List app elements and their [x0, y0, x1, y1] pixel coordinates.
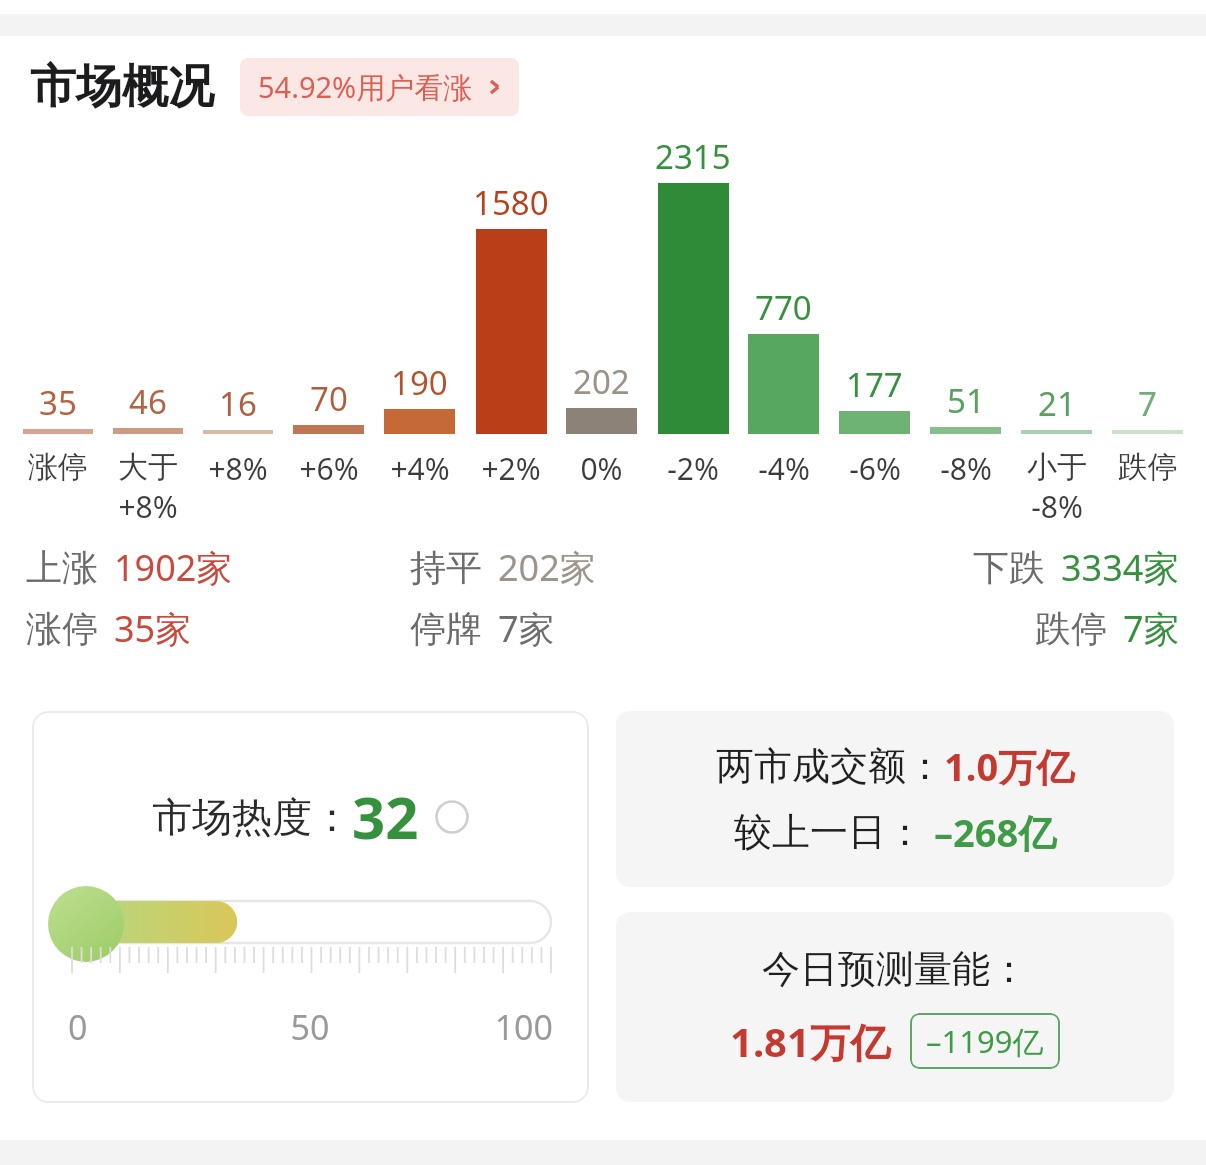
button[interactable]: 今日预测量能： [616, 912, 1174, 1102]
staticText: 1.81万亿 [730, 1014, 890, 1069]
button[interactable]: 16 [194, 134, 282, 489]
staticText: 7 [1138, 381, 1157, 426]
button[interactable]: 70 [284, 134, 373, 489]
staticText: 今日预测量能： [762, 945, 1028, 993]
staticText: 2315 [655, 134, 731, 179]
staticText: +8% [118, 486, 178, 527]
staticText: 51 [947, 378, 985, 423]
staticText: 32 [352, 777, 419, 856]
button[interactable]: 2315 [648, 134, 737, 489]
staticText: 0% [580, 448, 623, 489]
staticText: 下跌 [973, 545, 1045, 590]
staticText: 202家 [498, 543, 596, 592]
staticText: 21 [1038, 381, 1076, 426]
staticText: 两市成交额： [716, 742, 944, 790]
staticText: -8% [1031, 486, 1083, 527]
button[interactable]: 51 [921, 134, 1010, 489]
staticText: 202 [573, 359, 630, 404]
staticText: 市场概况 [30, 58, 214, 116]
button[interactable]: 7 [1103, 134, 1192, 486]
staticText: 市场热度： [152, 792, 352, 842]
staticText: 54.92%用户看涨 [258, 67, 473, 107]
button[interactable]: 1580 [466, 134, 555, 489]
staticText: –268亿 [934, 806, 1057, 858]
staticText: 小于 [1027, 448, 1087, 486]
button[interactable]: 177 [830, 134, 919, 489]
button[interactable]: 市场热度： [32, 711, 589, 1103]
button[interactable]: 35 [14, 134, 102, 486]
staticText: 35家 [114, 604, 192, 653]
staticText: 3334家 [1061, 543, 1180, 592]
staticText: 35 [39, 380, 77, 425]
staticText: 较上一日： [734, 808, 924, 856]
staticText: 190 [391, 360, 448, 405]
staticText: 跌停 [1118, 448, 1178, 486]
staticText: 770 [755, 285, 812, 330]
staticText: 70 [310, 376, 348, 421]
staticText: 1580 [473, 180, 549, 225]
staticText: -8% [940, 448, 992, 489]
staticText: 大于 [118, 448, 178, 486]
staticText: 16 [219, 381, 257, 426]
staticText: 跌停 [1035, 606, 1107, 651]
staticText: 1.0万亿 [944, 740, 1075, 792]
staticText: 停牌 [410, 606, 482, 651]
staticText: 50 [229, 1004, 391, 1050]
button[interactable]: 两市成交额： [616, 711, 1174, 887]
other: 帮助 [435, 800, 469, 834]
staticText: +2% [481, 448, 541, 489]
button[interactable]: 190 [375, 134, 464, 489]
staticText: 7家 [498, 604, 555, 653]
staticText: 涨停 [26, 606, 98, 651]
staticText: 0 [68, 1004, 229, 1050]
staticText: –1199亿 [926, 1020, 1044, 1062]
staticText: -2% [667, 448, 719, 489]
button[interactable]: 54.92%用户看涨 [240, 58, 519, 116]
staticText: +8% [208, 448, 268, 489]
staticText: +6% [299, 448, 359, 489]
staticText: -6% [849, 448, 901, 489]
staticText: 上涨 [26, 545, 98, 590]
staticText: 涨停 [28, 448, 88, 486]
staticText: 7家 [1123, 604, 1180, 653]
staticText: -4% [758, 448, 810, 489]
button[interactable]: 21 [1012, 134, 1101, 527]
staticText: +4% [390, 448, 450, 489]
staticText: 持平 [410, 545, 482, 590]
staticText: 100 [391, 1004, 553, 1050]
staticText: 177 [846, 362, 903, 407]
staticText: 1902家 [114, 543, 233, 592]
button[interactable]: 770 [739, 134, 828, 489]
button[interactable]: 202 [557, 134, 646, 489]
staticText: 46 [129, 379, 167, 424]
button[interactable]: 46 [104, 134, 192, 527]
